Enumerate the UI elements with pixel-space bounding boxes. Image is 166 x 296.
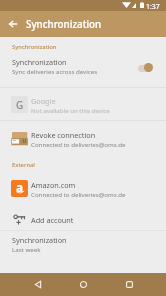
staticText: Sync deliveries across devices [12,67,98,75]
staticText: Connected to deliveries@oms.de [31,140,126,148]
staticText: Amazon.com [31,180,76,190]
staticText: a [16,180,24,195]
staticText: Synchronization [12,235,67,245]
button[interactable]: Back [25,273,50,296]
staticText: Synchronization [12,43,57,51]
staticText: Last week [12,245,41,253]
staticText: Connected to deliveries@oms.de [31,190,126,198]
button[interactable]: Revoke connection [0,127,166,152]
button[interactable]: Recent apps [117,273,142,296]
button[interactable]: Add account [0,208,166,230]
staticText: Synchronization [26,18,102,31]
button[interactable]: Home [71,273,96,296]
button[interactable]: Synchronization [0,53,166,83]
button[interactable]: a [0,176,166,201]
staticText: Not available on this device [31,106,110,114]
button[interactable]: G [0,92,166,117]
button[interactable]: Synchronization [0,233,166,257]
staticText: Google [31,96,56,106]
staticText: G [16,98,24,112]
staticText: Revoke connection [31,130,96,140]
button[interactable]: Navigate up [0,11,26,37]
staticText: 1:37 [146,2,160,11]
staticText: Add account [31,215,74,225]
staticText: External [12,161,35,169]
staticText: Synchronization [12,57,67,67]
